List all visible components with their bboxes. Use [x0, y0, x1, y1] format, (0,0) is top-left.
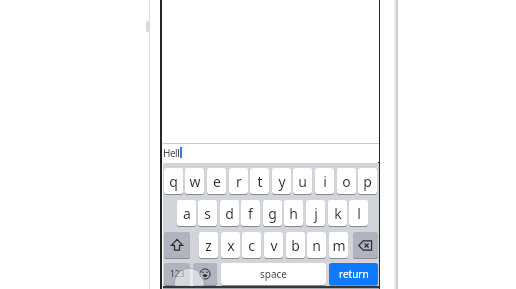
button[interactable]: g — [263, 200, 282, 226]
button[interactable]: r — [229, 168, 248, 194]
staticText: q — [169, 172, 178, 191]
staticText: s — [204, 204, 211, 223]
staticText: t — [257, 172, 263, 191]
staticText: b — [291, 236, 300, 255]
staticText: z — [205, 236, 212, 255]
staticText: 123 — [170, 268, 185, 280]
staticText: p — [363, 172, 372, 191]
staticText: l — [357, 204, 361, 223]
button[interactable]: j — [306, 200, 325, 226]
button[interactable]: y — [272, 168, 291, 194]
button[interactable]: e — [207, 168, 226, 194]
button[interactable] — [193, 263, 217, 285]
staticText: u — [298, 172, 307, 191]
staticText: return — [339, 267, 369, 281]
staticText: g — [268, 204, 277, 223]
button[interactable]: a — [177, 200, 196, 226]
staticText: x — [227, 236, 235, 255]
staticText: r — [236, 172, 242, 191]
staticText: w — [189, 172, 201, 191]
button[interactable] — [353, 232, 378, 258]
staticText: j — [314, 204, 318, 223]
staticText: Hell — [163, 146, 180, 160]
button[interactable]: space — [221, 263, 326, 285]
button[interactable]: s — [198, 200, 217, 226]
button[interactable] — [163, 144, 379, 162]
button[interactable]: w — [185, 168, 204, 194]
button[interactable]: l — [349, 200, 368, 226]
staticText: o — [342, 172, 351, 191]
button[interactable]: n — [307, 232, 326, 258]
staticText: a — [183, 204, 191, 223]
button[interactable]: i — [315, 168, 334, 194]
button[interactable]: d — [220, 200, 239, 226]
button[interactable]: 123 — [164, 263, 190, 285]
button[interactable]: u — [293, 168, 312, 194]
button[interactable]: z — [199, 232, 218, 258]
button[interactable]: b — [286, 232, 305, 258]
staticText: space — [260, 267, 287, 281]
staticText: h — [289, 204, 298, 223]
staticText: f — [248, 204, 253, 223]
staticText: y — [278, 172, 286, 191]
button[interactable]: q — [164, 168, 183, 194]
button[interactable]: h — [284, 200, 303, 226]
staticText: e — [213, 172, 221, 191]
button[interactable]: f — [241, 200, 260, 226]
staticText: v — [270, 236, 278, 255]
button[interactable]: v — [264, 232, 283, 258]
staticText: d — [225, 204, 234, 223]
button[interactable]: p — [358, 168, 377, 194]
button[interactable] — [164, 232, 190, 258]
staticText: i — [323, 172, 327, 191]
button[interactable]: x — [221, 232, 240, 258]
staticText: k — [334, 204, 342, 223]
button[interactable]: m — [329, 232, 348, 258]
staticText: n — [312, 236, 321, 255]
staticText: m — [332, 236, 346, 255]
button[interactable]: k — [328, 200, 347, 226]
button[interactable]: o — [337, 168, 356, 194]
button[interactable]: return — [329, 263, 378, 285]
staticText: c — [248, 236, 255, 255]
button[interactable]: t — [250, 168, 269, 194]
button[interactable]: c — [242, 232, 261, 258]
